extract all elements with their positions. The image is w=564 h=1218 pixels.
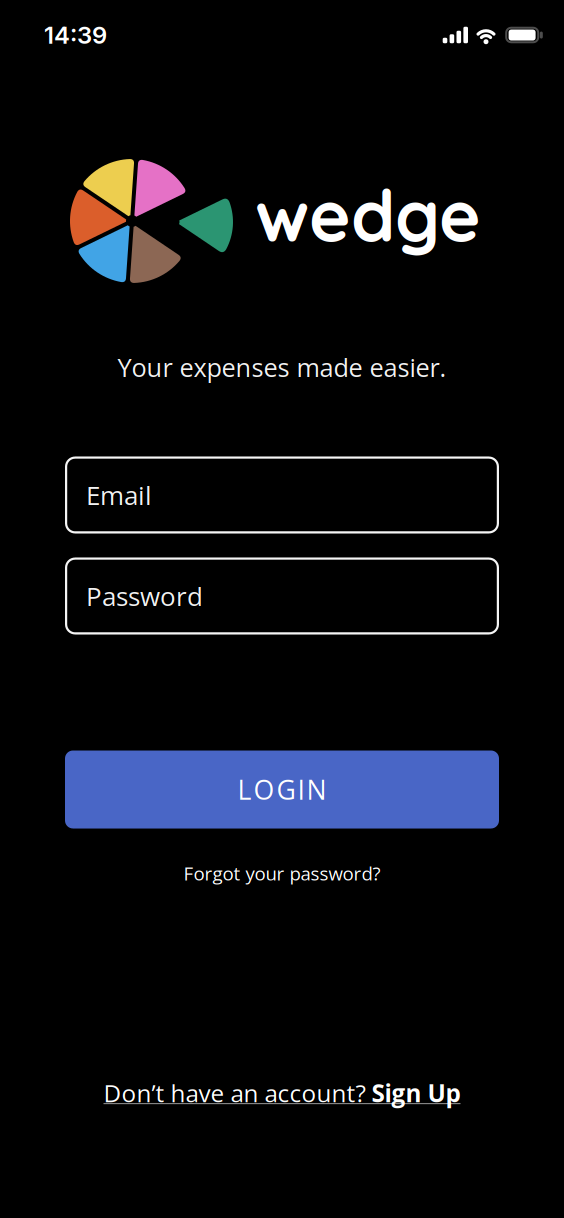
staticText: Don’t have an account? Sign Up bbox=[103, 1077, 460, 1109]
staticText: Email bbox=[86, 477, 152, 513]
staticText: Password bbox=[86, 578, 203, 614]
button[interactable]: Password bbox=[65, 557, 499, 634]
staticText: wedge bbox=[255, 171, 481, 259]
staticText: 14:39 bbox=[44, 20, 107, 49]
staticText: Your expenses made easier. bbox=[117, 350, 446, 384]
button[interactable]: Forgot your password? bbox=[183, 860, 380, 886]
button[interactable]: LOGIN bbox=[65, 750, 499, 828]
staticText: Forgot your password? bbox=[183, 860, 380, 886]
staticText: LOGIN bbox=[237, 771, 326, 808]
button[interactable]: Email bbox=[65, 456, 499, 533]
button[interactable]: Don’t have an account? Sign Up bbox=[103, 1077, 460, 1109]
